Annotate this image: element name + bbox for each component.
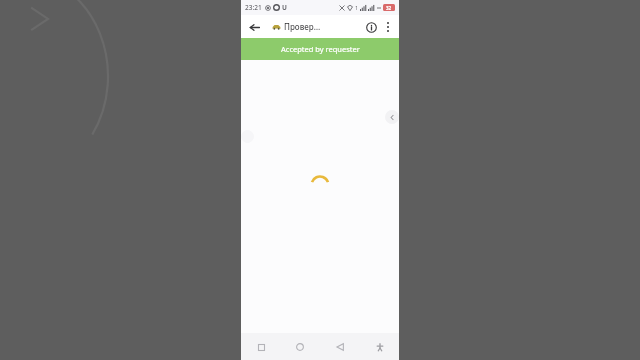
button[interactable]: Back [331,338,349,356]
staticText: Accepted by requester [281,44,360,54]
button[interactable]: Accepted by requester [241,38,399,60]
button[interactable]: Home [291,338,309,356]
staticText: Проверка модели ТС н… [284,21,323,32]
button[interactable]: More options [380,19,396,35]
staticText: 23:21 [245,3,262,12]
staticText: 32 [386,5,392,11]
button[interactable]: Open side panel [385,110,399,124]
button[interactable]: Info [362,18,380,36]
staticText: 1 [355,4,359,11]
button[interactable]: Accessibility [371,338,389,356]
staticText: U [282,3,287,12]
button[interactable]: Recent apps [252,338,270,356]
button[interactable]: Back [244,17,264,37]
